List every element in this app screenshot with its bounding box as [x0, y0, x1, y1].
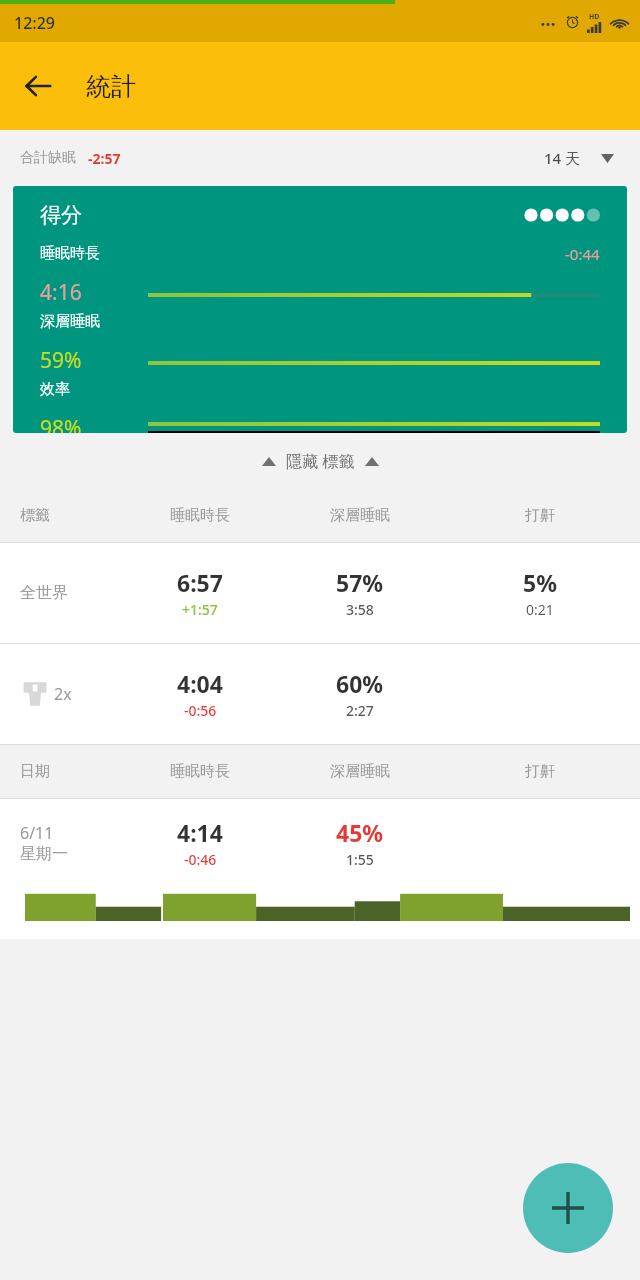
staticText: 星期一 [20, 844, 68, 864]
staticText: 睡眠時長 [40, 244, 100, 263]
staticText: 3:58 [346, 600, 374, 619]
staticText: 全世界 [20, 583, 68, 603]
staticText: -0:44 [565, 244, 600, 264]
staticText: 日期 [20, 762, 120, 781]
staticText: 深層睡眠 [280, 762, 440, 781]
staticText: 效率 [40, 380, 70, 399]
staticText: 59% [40, 346, 82, 375]
staticText: 2x [54, 683, 72, 705]
staticText: 合計缺眠 [20, 149, 76, 167]
staticText: 標籤 [20, 506, 120, 525]
staticText: 1:55 [346, 850, 374, 869]
button[interactable]: 隱藏 標籤 [0, 433, 640, 489]
staticText: 12:29 [14, 12, 55, 34]
staticText: 14 天 [544, 148, 581, 168]
staticText: 得分 [40, 202, 82, 228]
button[interactable]: 14 天 [538, 144, 620, 172]
staticText: 6/11 [20, 822, 54, 844]
button[interactable]: 6/11 [0, 799, 640, 939]
staticText: 統計 [86, 71, 136, 102]
staticText: 4:16 [40, 278, 82, 307]
staticText: 深層睡眠 [280, 506, 440, 525]
staticText: 4:14 [177, 817, 223, 848]
staticText: 隱藏 標籤 [286, 450, 355, 472]
staticText: 4:04 [177, 668, 223, 699]
button[interactable]: 2x [0, 644, 640, 744]
staticText: 深層睡眠 [40, 312, 100, 331]
button[interactable]: Add [523, 1163, 613, 1253]
button[interactable]: Back [10, 58, 66, 114]
staticText: 57% [336, 567, 384, 598]
staticText: 98% [40, 414, 82, 433]
staticText: 睡眠時長 [120, 762, 280, 781]
button[interactable]: 全世界 [0, 543, 640, 643]
staticText: 6:57 [177, 567, 223, 598]
staticText: -0:56 [184, 701, 217, 720]
staticText: 45% [336, 817, 384, 848]
staticText: 打鼾 [440, 762, 640, 781]
staticText: 睡眠時長 [120, 506, 280, 525]
staticText: 5% [523, 567, 557, 598]
staticText: -2:57 [88, 149, 121, 168]
staticText: 打鼾 [440, 506, 640, 525]
staticText: HD [589, 12, 600, 22]
staticText: 0:21 [526, 600, 554, 619]
staticText: 60% [336, 668, 384, 699]
staticText: +1:57 [182, 600, 218, 619]
button[interactable]: 得分 [13, 186, 627, 433]
staticText: -0:46 [184, 850, 217, 869]
staticText: 2:27 [346, 701, 374, 720]
